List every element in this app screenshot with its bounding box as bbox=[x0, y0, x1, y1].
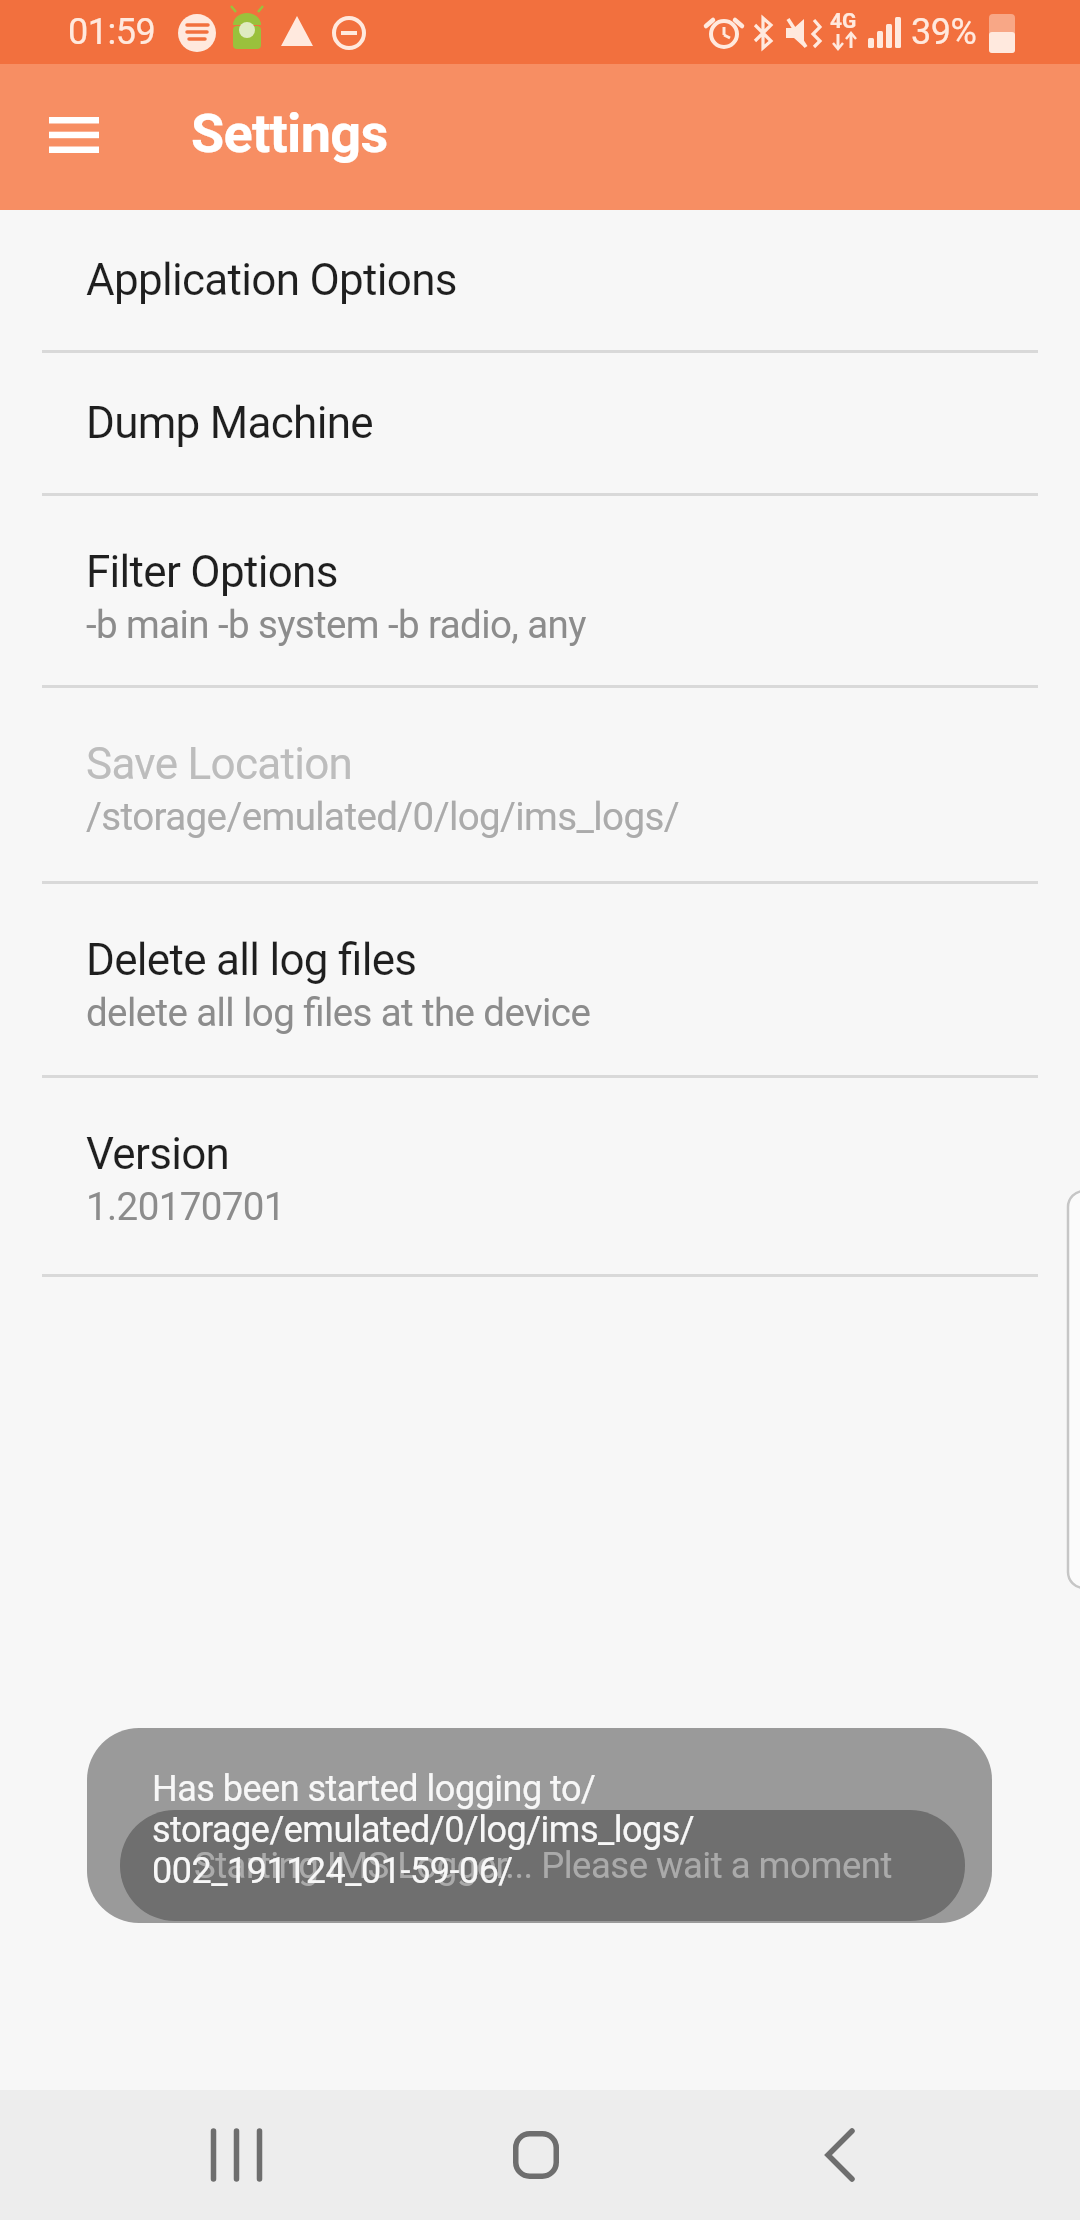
button[interactable] bbox=[29, 97, 119, 173]
staticText: Has been started logging to/ storage/emu… bbox=[152, 1768, 695, 1892]
button[interactable] bbox=[466, 2090, 606, 2220]
staticText: Delete all log files bbox=[86, 934, 417, 986]
staticText: Starting IMS Logger... Please wait a mom… bbox=[194, 1844, 892, 1887]
staticText: delete all log files at the device bbox=[86, 990, 591, 1035]
button[interactable]: Delete all log files bbox=[0, 884, 1080, 1078]
staticText: 4G bbox=[830, 9, 857, 34]
staticText: Filter Options bbox=[86, 546, 338, 598]
button[interactable] bbox=[166, 2090, 306, 2220]
button[interactable] bbox=[770, 2090, 910, 2220]
staticText: Settings bbox=[191, 102, 388, 165]
button[interactable]: Dump Machine bbox=[0, 353, 1080, 496]
staticText: /storage/emulated/0/log/ims_logs/ bbox=[86, 794, 680, 839]
staticText: 1.20170701 bbox=[86, 1184, 285, 1229]
button[interactable]: Save Location bbox=[0, 688, 1080, 884]
staticText: 01:59 bbox=[68, 11, 156, 53]
button[interactable]: Filter Options bbox=[0, 496, 1080, 688]
button[interactable]: Version bbox=[0, 1078, 1080, 1277]
staticText: Save Location bbox=[86, 738, 353, 790]
staticText: Dump Machine bbox=[86, 397, 373, 449]
staticText: Version bbox=[86, 1128, 230, 1180]
staticText: Application Options bbox=[86, 254, 457, 306]
staticText: 39% bbox=[911, 11, 977, 53]
staticText: -b main -b system -b radio, any bbox=[86, 602, 586, 647]
button[interactable]: Application Options bbox=[0, 210, 1080, 353]
